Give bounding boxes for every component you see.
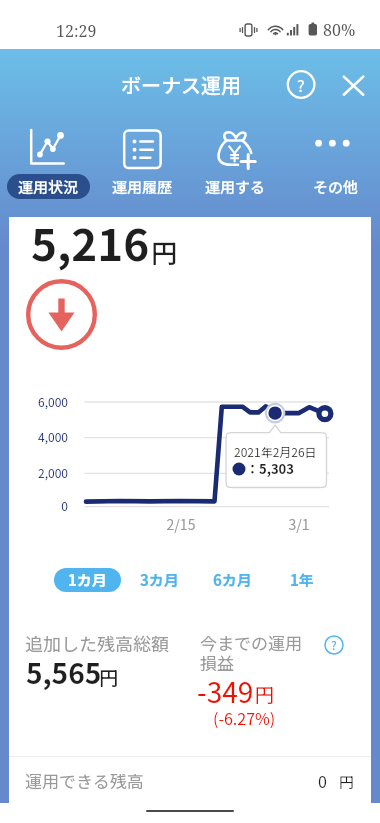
staticText: 3/1 (279, 514, 319, 534)
staticText: -349 (197, 671, 254, 712)
button[interactable]: 運用できる残高 (9, 757, 371, 803)
staticText: 運用できる残高 (25, 768, 144, 793)
staticText: 12:29 (56, 20, 97, 42)
staticText: 80% (323, 19, 356, 41)
staticText: 6,000 (9, 393, 68, 410)
button[interactable]: その他 (294, 174, 377, 199)
staticText: 追加した残高総額 (25, 630, 169, 656)
button[interactable]: 3カ月 (126, 568, 193, 592)
staticText: 5,565 (26, 652, 102, 693)
staticText: ? (331, 636, 337, 653)
staticText: 2/15 (161, 514, 201, 534)
staticText: 運用する (205, 176, 266, 198)
button[interactable]: 1年 (268, 568, 335, 592)
staticText: 3カ月 (140, 569, 179, 591)
staticText: 2,000 (9, 464, 68, 481)
staticText: 円 (255, 680, 275, 708)
staticText: その他 (313, 176, 359, 198)
button[interactable]: ヘルプ (324, 635, 344, 655)
staticText: (-6.27%) (213, 706, 276, 729)
staticText: ? (297, 73, 305, 96)
staticText: 6カ月 (213, 569, 252, 591)
staticText: ：5,303 (246, 459, 294, 478)
staticText: 2021年2月26日 (234, 443, 317, 460)
staticText: 1年 (290, 569, 314, 591)
button[interactable]: 閉じる (341, 73, 367, 99)
staticText: 円 (99, 663, 119, 691)
staticText: 今までの運用 損益 (200, 630, 302, 675)
staticText: 1カ月 (68, 569, 107, 591)
staticText: 5,216 (31, 210, 150, 274)
button[interactable]: 運用履歴 (101, 174, 184, 199)
staticText: 0 (318, 769, 327, 792)
staticText: 4,000 (9, 428, 68, 445)
button[interactable]: 6カ月 (199, 568, 266, 592)
staticText: 運用状況 (18, 176, 79, 198)
staticText: ボーナス運用 (121, 70, 241, 99)
staticText: 円 (151, 233, 178, 271)
button[interactable]: 運用状況 (7, 174, 90, 199)
button[interactable]: 1カ月 (54, 568, 121, 592)
staticText: 0 (9, 497, 68, 514)
button[interactable]: 運用する (194, 174, 277, 199)
button[interactable]: ヘルプ (286, 70, 316, 100)
staticText: 運用履歴 (112, 176, 173, 198)
staticText: 円 (339, 771, 355, 793)
